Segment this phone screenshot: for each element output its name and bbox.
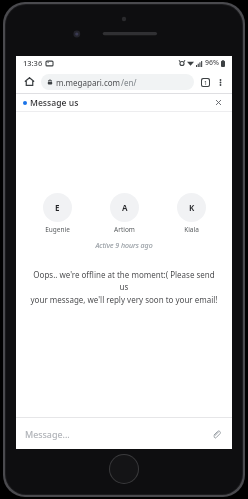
- staticText: Eugenie: [45, 225, 70, 234]
- staticText: 96%: [205, 58, 219, 68]
- staticText: A: [122, 202, 128, 213]
- staticText: Active 9 hours ago: [16, 241, 232, 251]
- button[interactable]: Open tabs: [197, 74, 213, 90]
- button[interactable]: Message...: [16, 418, 232, 449]
- staticText: /en/: [121, 77, 137, 88]
- button[interactable]: More options: [213, 75, 227, 89]
- button[interactable]: E: [28, 193, 86, 234]
- staticText: Message...: [25, 428, 70, 440]
- button[interactable]: Home page: [21, 73, 38, 90]
- staticText: 13:36: [23, 58, 43, 68]
- button[interactable]: Attach file: [209, 427, 223, 441]
- staticText: Message us: [30, 97, 79, 109]
- staticText: 1: [204, 79, 208, 86]
- staticText: E: [55, 202, 60, 213]
- button[interactable]: m.megapari.com: [41, 74, 194, 90]
- staticText: Kiala: [184, 225, 199, 234]
- button[interactable]: A: [95, 193, 153, 234]
- button[interactable]: K: [162, 193, 220, 234]
- button[interactable]: Close: [212, 96, 225, 109]
- staticText: m.megapari.com: [56, 77, 121, 88]
- staticText: Artiom: [114, 225, 135, 234]
- staticText: K: [189, 202, 195, 213]
- button[interactable]: Home: [110, 455, 138, 483]
- staticText: Oops.. we're offline at the moment:( Ple…: [30, 269, 218, 306]
